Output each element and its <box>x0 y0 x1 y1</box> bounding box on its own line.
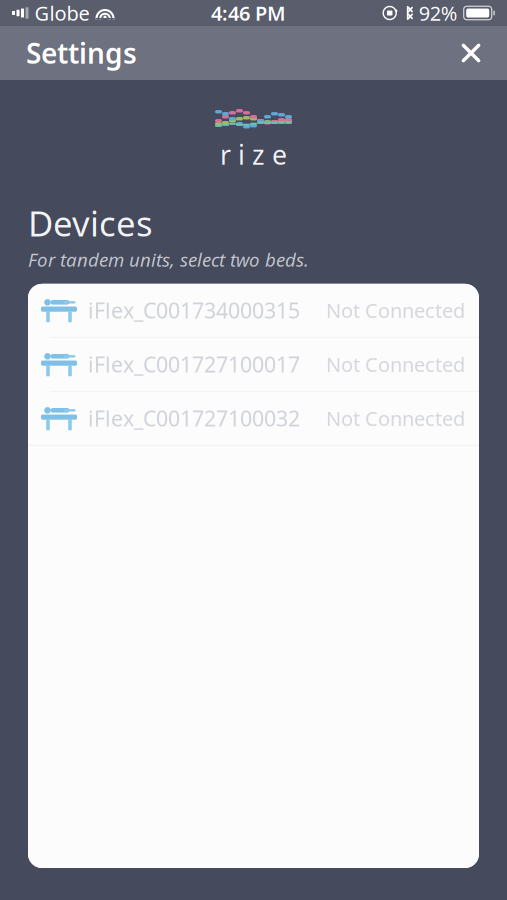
staticText: iFlex_C001734000315 <box>88 296 300 324</box>
staticText: Not Connected <box>326 405 465 432</box>
button[interactable]: iFlex_C001727100032 <box>28 392 479 445</box>
staticText: Not Connected <box>326 297 465 324</box>
staticText: Settings <box>26 34 137 72</box>
staticText: Devices <box>28 200 153 246</box>
button[interactable]: Close <box>449 31 493 75</box>
staticText: For tandem units, select two beds. <box>28 247 309 272</box>
staticText: 4:46 PM <box>211 0 286 26</box>
button[interactable]: iFlex_C001727100017 <box>28 338 479 391</box>
staticText: iFlex_C001727100017 <box>88 350 300 378</box>
staticText: Globe <box>34 0 89 26</box>
staticText: iFlex_C001727100032 <box>88 404 300 432</box>
staticText: r i z e <box>220 137 287 172</box>
button[interactable]: iFlex_C001734000315 <box>28 284 479 337</box>
staticText: Not Connected <box>326 351 465 378</box>
staticText: 92% <box>419 0 458 26</box>
